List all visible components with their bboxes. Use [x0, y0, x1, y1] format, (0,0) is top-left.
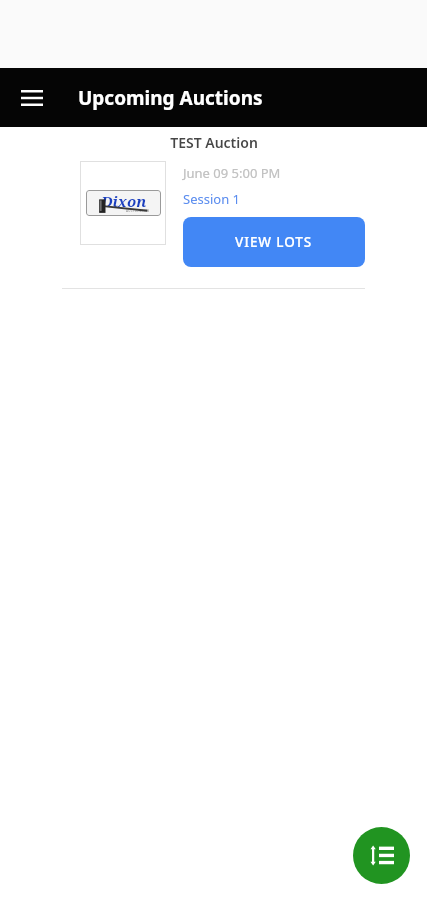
- staticText: AUCTIONEERS: [126, 209, 150, 213]
- staticText: Upcoming Auctions: [78, 85, 263, 111]
- staticText: Session 1: [183, 190, 240, 208]
- button[interactable]: Session 1: [183, 190, 240, 208]
- staticText: Dixon: [101, 191, 147, 211]
- staticText: VIEW LOTS: [235, 233, 313, 251]
- button[interactable]: Open navigation menu: [11, 77, 53, 119]
- button[interactable]: VIEW LOTS: [183, 217, 365, 267]
- staticText: June 09 5:00 PM: [183, 164, 281, 182]
- button[interactable]: Auction image: [80, 161, 166, 245]
- staticText: TEST Auction: [170, 133, 258, 152]
- button[interactable]: Sort auctions: [353, 827, 410, 884]
